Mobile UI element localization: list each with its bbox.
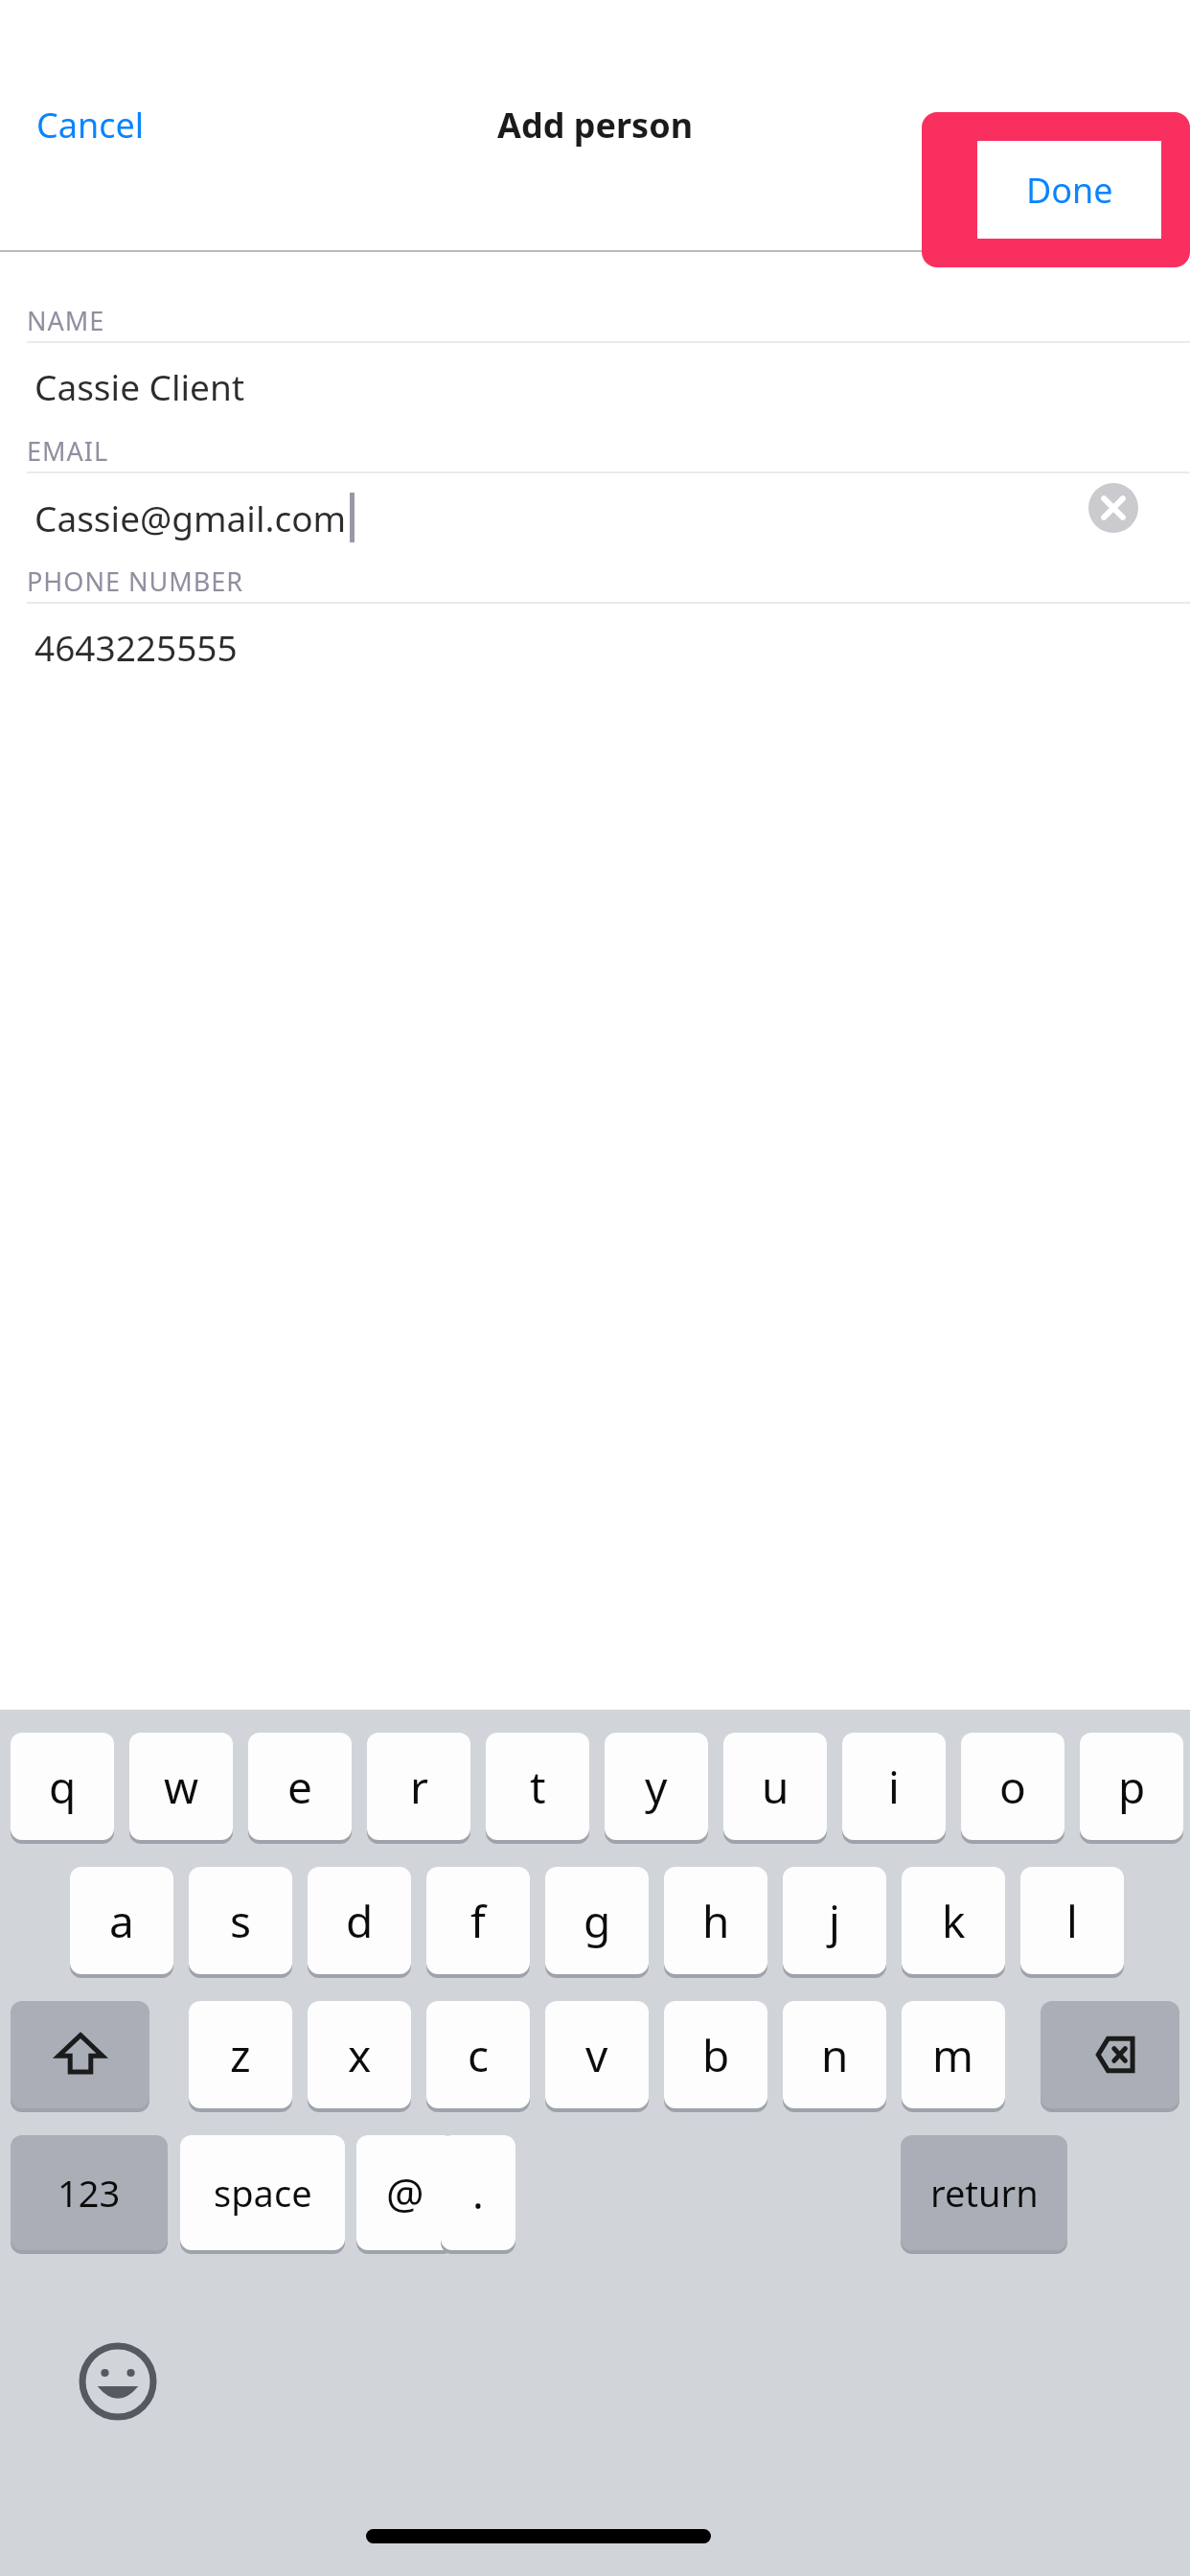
button[interactable]: w bbox=[129, 1733, 233, 1840]
button[interactable]: Done bbox=[922, 112, 1190, 267]
button[interactable]: d bbox=[308, 1867, 411, 1974]
staticText: u bbox=[762, 1757, 790, 1817]
button[interactable]: return bbox=[901, 2135, 1067, 2250]
button[interactable]: space bbox=[180, 2135, 345, 2250]
staticText: return bbox=[930, 2168, 1039, 2218]
staticText: Cassie@gmail.com bbox=[34, 494, 347, 541]
staticText: l bbox=[1066, 1891, 1078, 1951]
staticText: q bbox=[49, 1757, 77, 1817]
staticText: Done bbox=[1026, 167, 1113, 214]
button[interactable]: PHONE NUMBER bbox=[0, 563, 1190, 688]
button[interactable]: r bbox=[367, 1733, 470, 1840]
staticText: v bbox=[585, 2025, 608, 2085]
staticText: n bbox=[821, 2025, 849, 2085]
button[interactable]: t bbox=[486, 1733, 589, 1840]
button[interactable]: n bbox=[783, 2001, 886, 2108]
button[interactable]: c bbox=[426, 2001, 530, 2108]
button[interactable]: y bbox=[605, 1733, 708, 1840]
staticText: g bbox=[584, 1891, 611, 1951]
staticText: Cancel bbox=[36, 102, 145, 149]
staticText: @ bbox=[386, 2164, 424, 2221]
staticText: Add person bbox=[497, 102, 694, 149]
button[interactable]: q bbox=[11, 1733, 114, 1840]
staticText: 123 bbox=[57, 2168, 121, 2218]
staticText: e bbox=[287, 1757, 312, 1817]
staticText: d bbox=[346, 1891, 374, 1951]
button[interactable]: 123 bbox=[11, 2135, 168, 2250]
button[interactable]: Emoji keyboard bbox=[79, 2342, 157, 2421]
button[interactable]: EMAIL bbox=[0, 433, 1190, 558]
staticText: m bbox=[932, 2025, 974, 2085]
staticText: 4643225555 bbox=[34, 623, 238, 671]
button[interactable]: NAME bbox=[0, 303, 1190, 427]
staticText: . bbox=[472, 2164, 484, 2221]
staticText: r bbox=[410, 1757, 428, 1817]
button[interactable]: @ bbox=[356, 2135, 454, 2250]
staticText: a bbox=[109, 1891, 134, 1951]
button[interactable]: g bbox=[545, 1867, 649, 1974]
button[interactable]: i bbox=[842, 1733, 946, 1840]
button[interactable]: u bbox=[723, 1733, 827, 1840]
staticText: y bbox=[645, 1757, 668, 1817]
button[interactable]: l bbox=[1020, 1867, 1124, 1974]
staticText: c bbox=[468, 2025, 490, 2085]
staticText: Cassie Client bbox=[34, 362, 245, 410]
button[interactable]: x bbox=[308, 2001, 411, 2108]
staticText: PHONE NUMBER bbox=[27, 563, 244, 599]
button[interactable]: Clear text bbox=[1088, 483, 1138, 533]
staticText: k bbox=[942, 1891, 966, 1951]
staticText: i bbox=[888, 1757, 900, 1817]
staticText: j bbox=[829, 1891, 840, 1951]
staticText: o bbox=[999, 1757, 1026, 1817]
button[interactable]: s bbox=[189, 1867, 292, 1974]
button[interactable]: e bbox=[248, 1733, 352, 1840]
staticText: NAME bbox=[27, 303, 105, 338]
button[interactable]: k bbox=[902, 1867, 1005, 1974]
staticText: t bbox=[530, 1757, 546, 1817]
button[interactable]: v bbox=[545, 2001, 649, 2108]
button[interactable]: b bbox=[664, 2001, 767, 2108]
staticText: EMAIL bbox=[27, 433, 109, 469]
staticText: h bbox=[702, 1891, 730, 1951]
button[interactable]: a bbox=[70, 1867, 173, 1974]
button[interactable]: Shift bbox=[11, 2001, 149, 2108]
button[interactable]: m bbox=[902, 2001, 1005, 2108]
staticText: space bbox=[214, 2168, 312, 2218]
button[interactable]: . bbox=[441, 2135, 515, 2250]
staticText: w bbox=[164, 1757, 199, 1817]
button[interactable]: z bbox=[189, 2001, 292, 2108]
staticText: z bbox=[230, 2025, 251, 2085]
staticText: b bbox=[702, 2025, 730, 2085]
staticText: f bbox=[470, 1891, 486, 1951]
button[interactable]: f bbox=[426, 1867, 530, 1974]
staticText: x bbox=[348, 2025, 372, 2085]
button[interactable]: o bbox=[961, 1733, 1064, 1840]
staticText: s bbox=[230, 1891, 252, 1951]
staticText: p bbox=[1118, 1757, 1146, 1817]
button[interactable]: Backspace bbox=[1041, 2001, 1179, 2108]
button[interactable]: j bbox=[783, 1867, 886, 1974]
button[interactable]: h bbox=[664, 1867, 767, 1974]
button[interactable]: Cancel bbox=[15, 84, 166, 166]
button[interactable]: p bbox=[1080, 1733, 1183, 1840]
